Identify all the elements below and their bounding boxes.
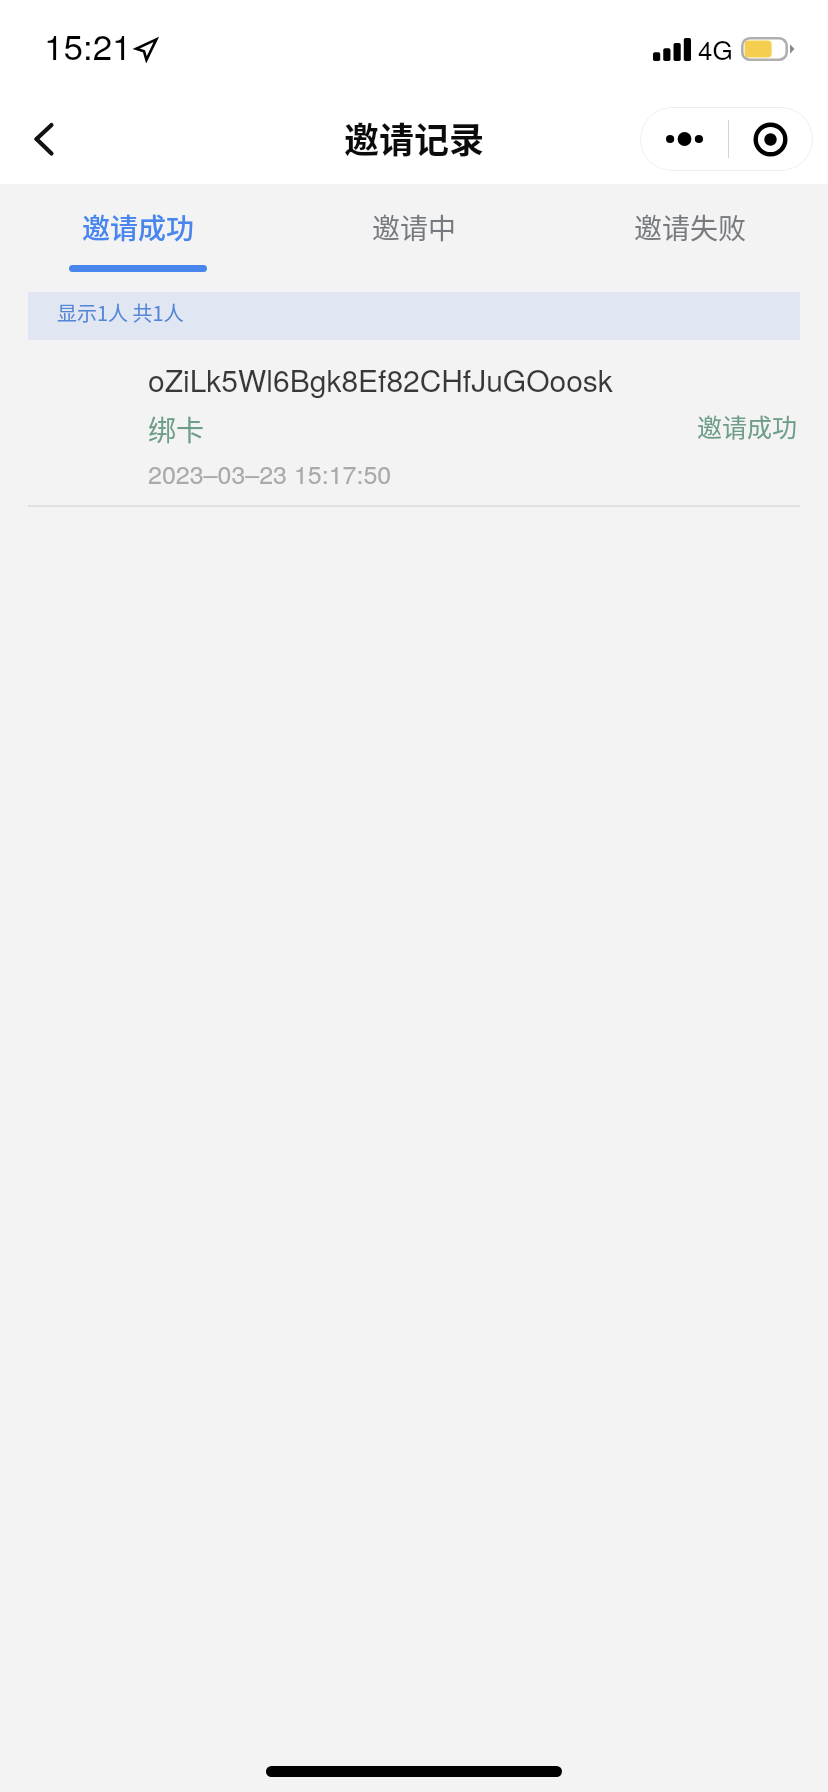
staticText: 邀请中 [372,207,457,248]
staticText: 邀请失败 [634,207,747,248]
staticText: 15:21 [44,20,132,70]
staticText: 2023–03–23 15:17:50 [148,455,392,491]
button[interactable]: 邀请成功 [0,184,276,292]
staticText: oZiLk5Wl6Bgk8Ef82CHfJuGOoosk [148,358,613,401]
staticText: 邀请成功 [697,408,798,444]
button[interactable]: Close mini program [729,107,812,171]
button[interactable]: 邀请中 [276,184,552,292]
button[interactable]: 邀请失败 [552,184,828,292]
button[interactable]: Back [8,103,80,175]
button[interactable]: More options [640,107,728,171]
staticText: 显示1人 共1人 [57,298,184,327]
staticText: 4G [698,30,733,67]
staticText: 绑卡 [148,409,205,450]
staticText: 邀请成功 [82,207,195,248]
staticText: 邀请记录 [344,112,485,163]
button[interactable]: oZiLk5Wl6Bgk8Ef82CHfJuGOoosk [0,340,828,507]
